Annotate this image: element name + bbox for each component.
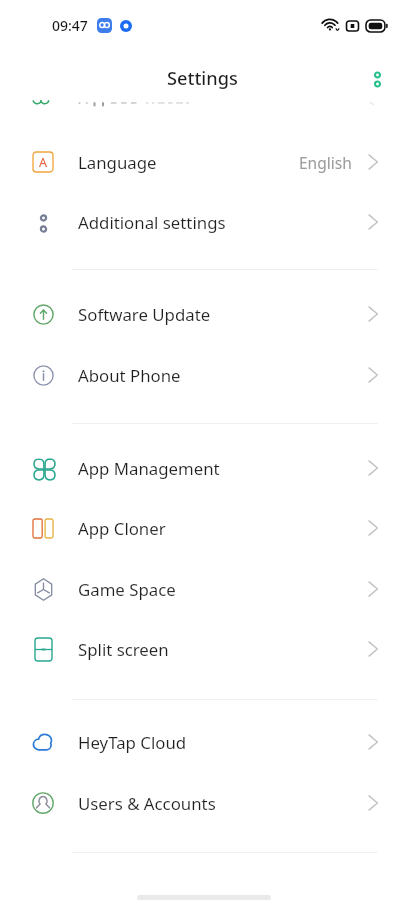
staticText: Game Space <box>78 578 176 601</box>
staticText: Users & Accounts <box>78 792 216 815</box>
staticText: Software Update <box>78 303 211 326</box>
staticText: A <box>39 154 47 171</box>
staticText: English <box>299 152 352 173</box>
button[interactable]: Additional settings <box>0 192 405 252</box>
staticText: App Cloner <box>78 517 166 540</box>
staticText: About Phone <box>78 364 181 387</box>
staticText: HeyTap Cloud <box>78 731 187 754</box>
staticText: Language <box>78 151 157 174</box>
button[interactable]: Software Update <box>0 284 405 344</box>
staticText: 09:47 <box>52 16 88 35</box>
staticText: Split screen <box>78 638 169 661</box>
staticText: App Management <box>78 457 220 480</box>
button[interactable]: App Cloner <box>0 498 405 558</box>
button[interactable]: Split screen <box>0 619 405 679</box>
button[interactable]: HeyTap Cloud <box>0 712 405 772</box>
button[interactable]: Users & Accounts <box>0 773 405 833</box>
button[interactable]: Game Space <box>0 559 405 619</box>
staticText: Settings <box>167 66 238 91</box>
button[interactable]: About Phone <box>0 345 405 405</box>
button[interactable]: App Management <box>0 438 405 498</box>
button[interactable]: More options <box>360 62 394 96</box>
button[interactable]: A <box>0 132 405 192</box>
staticText: Additional settings <box>78 211 226 234</box>
